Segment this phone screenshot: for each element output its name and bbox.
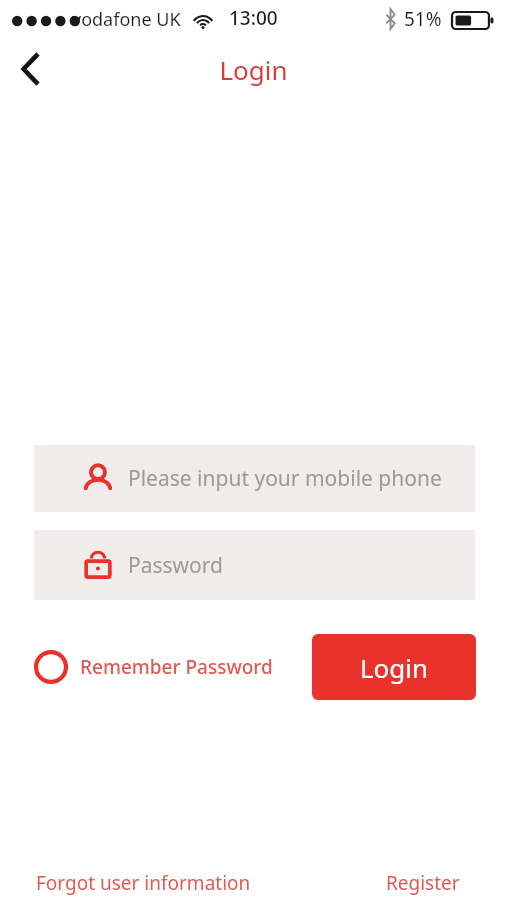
button[interactable]: Register <box>372 862 474 900</box>
staticText: Password <box>128 551 223 580</box>
button[interactable]: Forgot user information <box>22 862 265 900</box>
staticText: vodafone UK <box>72 7 181 32</box>
staticText: Login <box>219 52 288 87</box>
button[interactable]: Remember Password <box>34 640 273 694</box>
button[interactable]: Please input your mobile phone <box>34 445 475 512</box>
staticText: Please input your mobile phone <box>128 464 442 493</box>
staticText: Forgot user information <box>36 870 251 896</box>
staticText: 51% <box>404 6 442 32</box>
staticText: Register <box>386 870 460 896</box>
staticText: 13:00 <box>229 5 278 31</box>
staticText: Remember Password <box>80 654 273 680</box>
button[interactable]: Back <box>6 45 54 93</box>
staticText: Login <box>360 650 429 685</box>
button[interactable]: Password <box>34 530 475 600</box>
button[interactable]: Login <box>312 634 476 700</box>
